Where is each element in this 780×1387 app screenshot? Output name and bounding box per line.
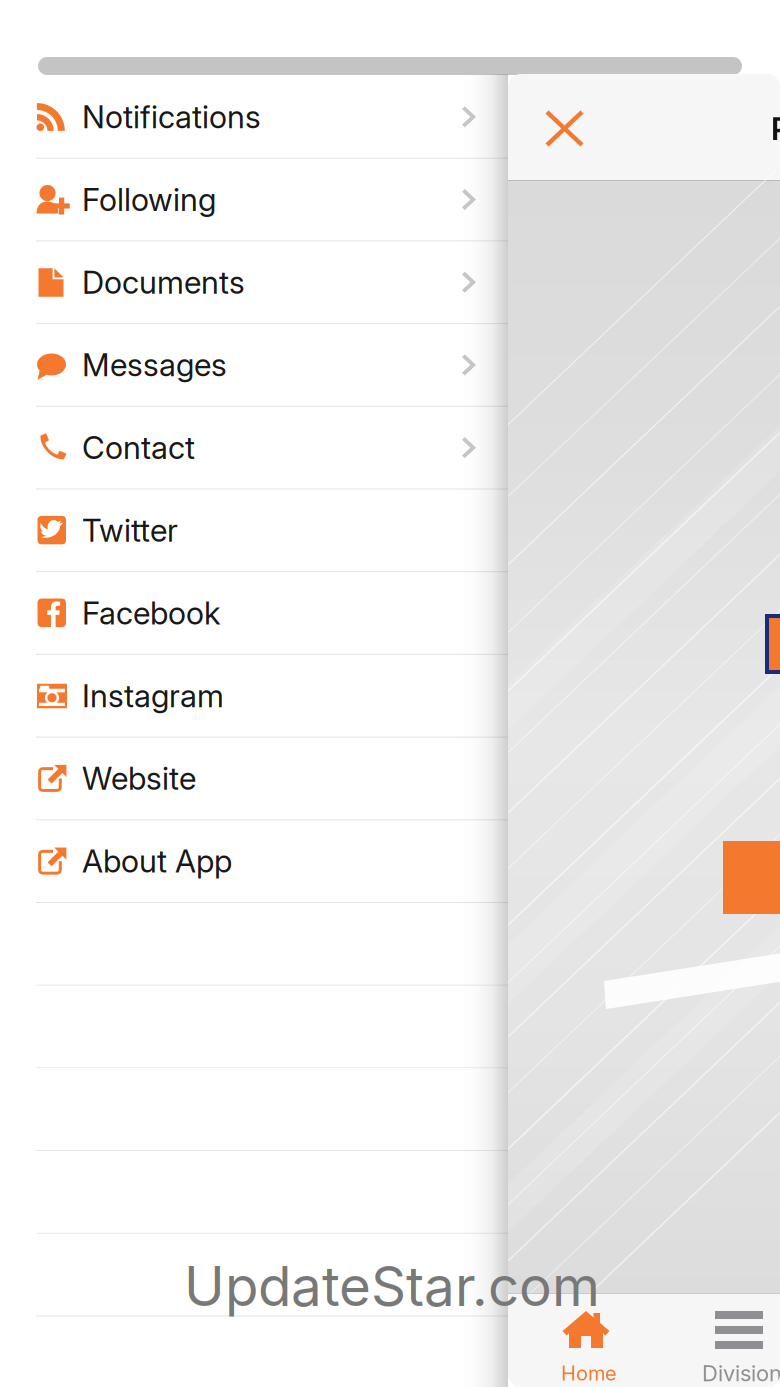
staticText: Instagram — [82, 677, 224, 715]
button[interactable]: Divisions — [664, 1294, 780, 1387]
button[interactable]: Twitter — [0, 489, 508, 572]
staticText: Facebook — [82, 594, 221, 632]
staticText: Divisions — [702, 1360, 780, 1387]
staticText: P — [771, 110, 780, 148]
staticText: Website — [82, 759, 196, 797]
button[interactable]: About App — [0, 820, 508, 903]
staticText: Contact — [82, 429, 195, 467]
button[interactable]: Documents — [0, 241, 508, 324]
staticText: Following — [82, 181, 216, 218]
staticText: Documents — [82, 263, 245, 301]
staticText: UpdateStar.com — [184, 1253, 600, 1319]
button[interactable]: Close — [508, 74, 600, 180]
button[interactable]: Home — [508, 1294, 664, 1387]
button[interactable]: Following — [0, 159, 508, 241]
staticText: Home — [561, 1361, 617, 1385]
button[interactable]: Messages — [0, 324, 508, 407]
staticText: Notifications — [82, 98, 261, 136]
staticText: About App — [82, 842, 232, 880]
button[interactable]: Instagram — [0, 655, 508, 738]
button[interactable]: Contact — [0, 407, 508, 489]
staticText: Twitter — [82, 511, 178, 549]
button[interactable]: Notifications — [0, 76, 508, 159]
button[interactable]: Website — [0, 738, 508, 820]
button[interactable]: Facebook — [0, 572, 508, 655]
staticText: Messages — [82, 346, 227, 384]
